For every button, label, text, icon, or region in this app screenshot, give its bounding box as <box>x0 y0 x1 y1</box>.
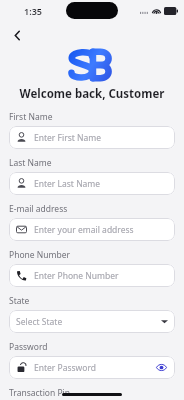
staticText: Enter Last Name <box>34 178 101 190</box>
staticText: Transaction Pin <box>9 387 71 399</box>
button[interactable]: Enter Last Name <box>9 172 175 195</box>
staticText: Password <box>9 341 48 353</box>
staticText: Enter Password <box>34 362 97 374</box>
button[interactable]: Enter your email address <box>9 218 175 241</box>
button[interactable]: Enter First Name <box>9 126 175 149</box>
staticText: Welcome back, Customer <box>0 86 184 102</box>
staticText: Enter Phone Number <box>34 270 119 282</box>
staticText: E-mail address <box>9 203 68 215</box>
button[interactable]: Show Password <box>155 361 168 374</box>
staticText: First Name <box>9 111 53 123</box>
staticText: Phone Number <box>9 249 70 261</box>
button[interactable]: Select State dropdown <box>9 310 175 333</box>
button[interactable]: Enter Phone Number <box>9 264 175 287</box>
staticText: 1:35 <box>24 5 42 17</box>
staticText: Enter First Name <box>34 132 101 144</box>
button[interactable]: Back <box>4 22 30 48</box>
staticText: Enter your email address <box>34 224 134 236</box>
staticText: Last Name <box>9 157 52 169</box>
button[interactable]: Enter Password <box>9 356 175 379</box>
staticText: Select State <box>16 316 63 328</box>
staticText: State <box>9 295 30 307</box>
